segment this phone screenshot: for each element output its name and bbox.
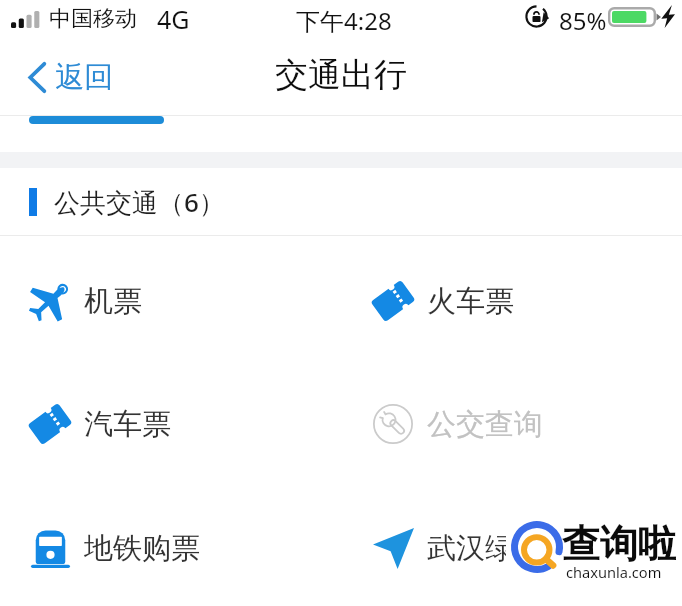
button[interactable]: 返回 xyxy=(22,54,119,101)
button[interactable]: 地铁购票 xyxy=(0,486,339,606)
staticText: 4G xyxy=(157,2,190,36)
staticText: 汽车票 xyxy=(84,406,171,443)
staticText: 查询啦 xyxy=(562,520,676,568)
button[interactable]: 火车票 xyxy=(343,239,682,363)
button[interactable]: 武汉绿色出行 xyxy=(343,486,682,606)
staticText: 火车票 xyxy=(427,283,514,320)
staticText: 地铁购票 xyxy=(84,530,200,567)
button[interactable]: 当前分类 xyxy=(29,116,164,124)
staticText: chaxunla.com xyxy=(566,562,662,582)
staticText: 中国移动 xyxy=(49,5,137,33)
staticText: 机票 xyxy=(84,283,142,320)
button[interactable]: 公交查询 xyxy=(343,362,682,486)
staticText: 下午4:28 xyxy=(296,4,392,37)
staticText: 返回 xyxy=(55,59,113,96)
staticText: 交通出行 xyxy=(275,54,407,96)
button[interactable]: 机票 xyxy=(0,239,339,363)
button[interactable]: 汽车票 xyxy=(0,362,339,486)
staticText: 85% xyxy=(559,4,607,37)
staticText: 公共交通（6） xyxy=(54,184,225,220)
staticText: 公交查询 xyxy=(427,406,543,443)
staticText: 武汉绿色出行 xyxy=(427,530,601,567)
